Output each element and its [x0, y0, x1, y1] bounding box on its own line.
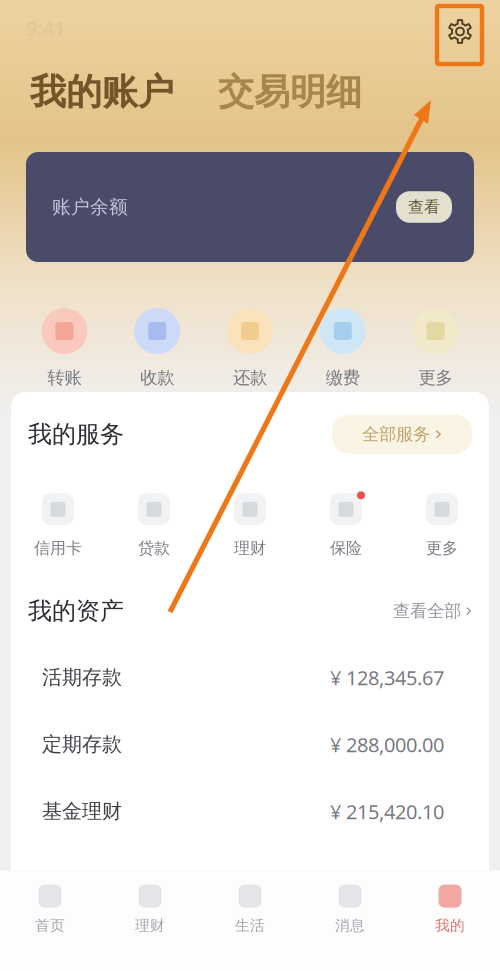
staticText: 9:41: [26, 15, 65, 41]
button[interactable]: 账户余额: [26, 152, 474, 262]
staticText: 首页: [35, 917, 65, 935]
button[interactable]: 生活: [200, 885, 300, 935]
staticText: 全部服务: [362, 424, 430, 445]
button[interactable]: 更多: [389, 308, 482, 388]
staticText: 活期存款: [42, 665, 122, 690]
staticText: 查看: [408, 197, 440, 217]
staticText: 收款: [140, 367, 174, 388]
staticText: 生活: [235, 917, 265, 935]
staticText: ¥ 215,420.10: [330, 798, 444, 825]
button[interactable]: 信用卡: [10, 491, 106, 558]
button[interactable]: 首页: [0, 885, 100, 935]
staticText: 定期存款: [42, 732, 122, 757]
button[interactable]: 还款: [204, 308, 296, 388]
button[interactable]: 定期存款: [0, 711, 500, 778]
staticText: 保险: [330, 538, 362, 558]
staticText: 理财: [135, 917, 165, 935]
staticText: 我的: [435, 917, 465, 935]
staticText: 转账: [47, 367, 81, 388]
staticText: 我的资产: [28, 596, 124, 626]
staticText: 还款: [233, 367, 267, 388]
staticText: 信用卡: [34, 538, 82, 558]
button[interactable]: 收款: [111, 308, 204, 388]
button[interactable]: 活期存款: [0, 644, 500, 711]
staticText: 我的账户: [30, 70, 174, 114]
staticText: ¥ 128,345.67: [330, 664, 444, 691]
staticText: 基金理财: [42, 799, 122, 824]
staticText: 贷款: [138, 538, 170, 558]
button[interactable]: 理财: [100, 885, 200, 935]
staticText: ¥ 288,000.00: [330, 731, 444, 758]
staticText: 缴费: [326, 367, 360, 388]
button[interactable]: 理财: [202, 491, 298, 558]
button[interactable]: 基金理财: [0, 778, 500, 845]
staticText: 更多: [419, 367, 453, 388]
button[interactable]: 转账: [18, 308, 111, 388]
button[interactable]: Settings: [438, 3, 482, 60]
button[interactable]: 贷款: [106, 491, 202, 558]
button[interactable]: 查看全部: [393, 600, 472, 622]
staticText: 我的服务: [28, 420, 124, 449]
staticText: 消息: [335, 917, 365, 935]
staticText: 交易明细: [218, 70, 362, 114]
staticText: 更多: [426, 538, 458, 558]
button[interactable]: 我的: [400, 885, 500, 935]
staticText: 查看全部: [393, 600, 461, 622]
button[interactable]: 缴费: [296, 308, 389, 388]
button[interactable]: 全部服务: [332, 415, 472, 454]
button[interactable]: 消息: [300, 885, 400, 935]
button[interactable]: 保险: [298, 491, 394, 558]
staticText: 理财: [234, 538, 266, 558]
button[interactable]: 更多: [394, 491, 490, 558]
staticText: 账户余额: [52, 195, 128, 218]
